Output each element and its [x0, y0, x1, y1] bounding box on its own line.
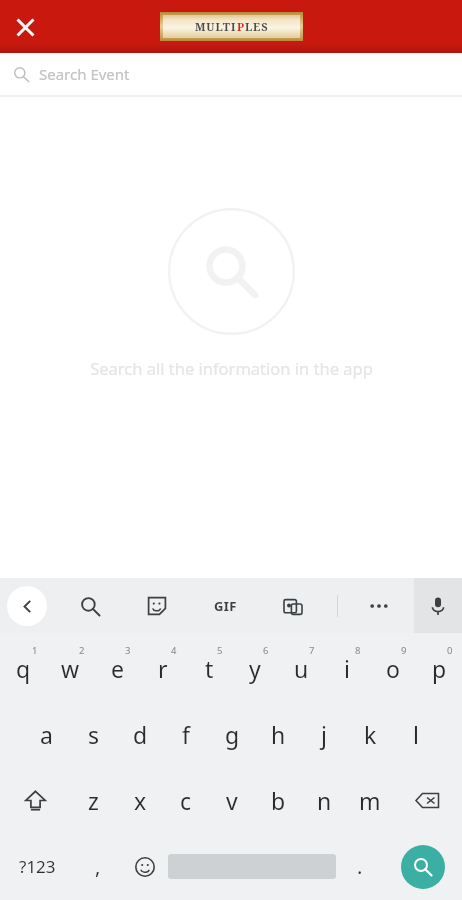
staticText: ?123	[19, 855, 56, 878]
staticText: z	[88, 785, 99, 816]
button[interactable]: Shift	[0, 767, 70, 833]
staticText: 9	[401, 644, 407, 657]
staticText: 5	[217, 644, 223, 657]
staticText: i	[344, 653, 350, 684]
button[interactable]: Translate	[271, 584, 315, 628]
button[interactable]: q	[0, 635, 47, 701]
button[interactable]: d	[117, 701, 163, 767]
button[interactable]: a	[23, 701, 70, 767]
button[interactable]: o	[370, 635, 416, 701]
button[interactable]: Space	[168, 833, 336, 900]
staticText: c	[180, 785, 192, 816]
staticText: 2	[79, 644, 85, 657]
button[interactable]: k	[347, 701, 393, 767]
button[interactable]: x	[117, 767, 163, 833]
button[interactable]: n	[301, 767, 347, 833]
staticText: x	[134, 785, 147, 816]
button[interactable]: e	[94, 635, 140, 701]
staticText: ,	[95, 853, 101, 880]
staticText: 4	[171, 644, 177, 657]
button[interactable]: s	[70, 701, 117, 767]
staticText: 8	[355, 644, 361, 657]
button[interactable]: z	[70, 767, 117, 833]
staticText: e	[111, 653, 124, 684]
staticText: s	[88, 719, 100, 750]
staticText: h	[271, 719, 286, 750]
staticText: 1	[32, 644, 38, 657]
staticText: P	[237, 19, 245, 34]
button[interactable]: Emoji	[121, 833, 168, 900]
staticText: MULTI	[195, 19, 237, 34]
button[interactable]: p	[416, 635, 462, 701]
button[interactable]: ,	[74, 833, 121, 900]
button[interactable]: ?123	[0, 833, 74, 900]
staticText: w	[61, 653, 80, 684]
staticText: l	[413, 719, 419, 750]
button[interactable]: Search	[68, 584, 112, 628]
staticText: m	[359, 785, 381, 816]
button[interactable]: y	[232, 635, 278, 701]
staticText: 7	[309, 644, 315, 657]
button[interactable]: Search Event	[0, 53, 462, 95]
button[interactable]: l	[393, 701, 439, 767]
staticText: Search Event	[39, 64, 130, 84]
button[interactable]: .	[336, 833, 383, 900]
staticText: 6	[263, 644, 269, 657]
button[interactable]: Voice input	[414, 578, 462, 633]
button[interactable]: Close	[2, 4, 48, 50]
button[interactable]: w	[47, 635, 94, 701]
button[interactable]: GIF	[203, 584, 247, 628]
staticText: Search all the information in the app	[90, 357, 373, 379]
staticText: a	[40, 719, 53, 750]
button[interactable]: h	[255, 701, 301, 767]
staticText: GIF	[214, 597, 237, 615]
staticText: k	[364, 719, 377, 750]
staticText: q	[16, 653, 31, 684]
staticText: f	[182, 719, 190, 750]
button[interactable]: Search	[383, 833, 462, 900]
staticText: o	[386, 653, 400, 684]
staticText: 3	[125, 644, 131, 657]
staticText: v	[226, 785, 238, 816]
button[interactable]: c	[163, 767, 209, 833]
staticText: t	[205, 653, 214, 684]
staticText: r	[158, 653, 168, 684]
button[interactable]: More options	[357, 584, 401, 628]
staticText: j	[321, 719, 327, 750]
button[interactable]: i	[324, 635, 370, 701]
button[interactable]: j	[301, 701, 347, 767]
staticText: g	[225, 719, 240, 750]
button[interactable]: Stickers	[135, 584, 179, 628]
staticText: d	[133, 719, 148, 750]
button[interactable]: f	[163, 701, 209, 767]
staticText: b	[271, 785, 286, 816]
button[interactable]: g	[209, 701, 255, 767]
staticText: u	[294, 653, 309, 684]
button[interactable]: Back	[7, 586, 47, 626]
staticText: p	[432, 653, 447, 684]
button[interactable]: Backspace	[393, 767, 462, 833]
button[interactable]: b	[255, 767, 301, 833]
staticText: .	[357, 853, 363, 880]
button[interactable]: Multiples logo	[160, 12, 303, 41]
button[interactable]: m	[347, 767, 393, 833]
button[interactable]: r	[140, 635, 186, 701]
staticText: 0	[447, 644, 453, 657]
staticText: y	[249, 653, 261, 684]
button[interactable]: v	[209, 767, 255, 833]
button[interactable]: t	[186, 635, 232, 701]
staticText: LES	[245, 19, 269, 34]
staticText: n	[317, 785, 332, 816]
button[interactable]: u	[278, 635, 324, 701]
